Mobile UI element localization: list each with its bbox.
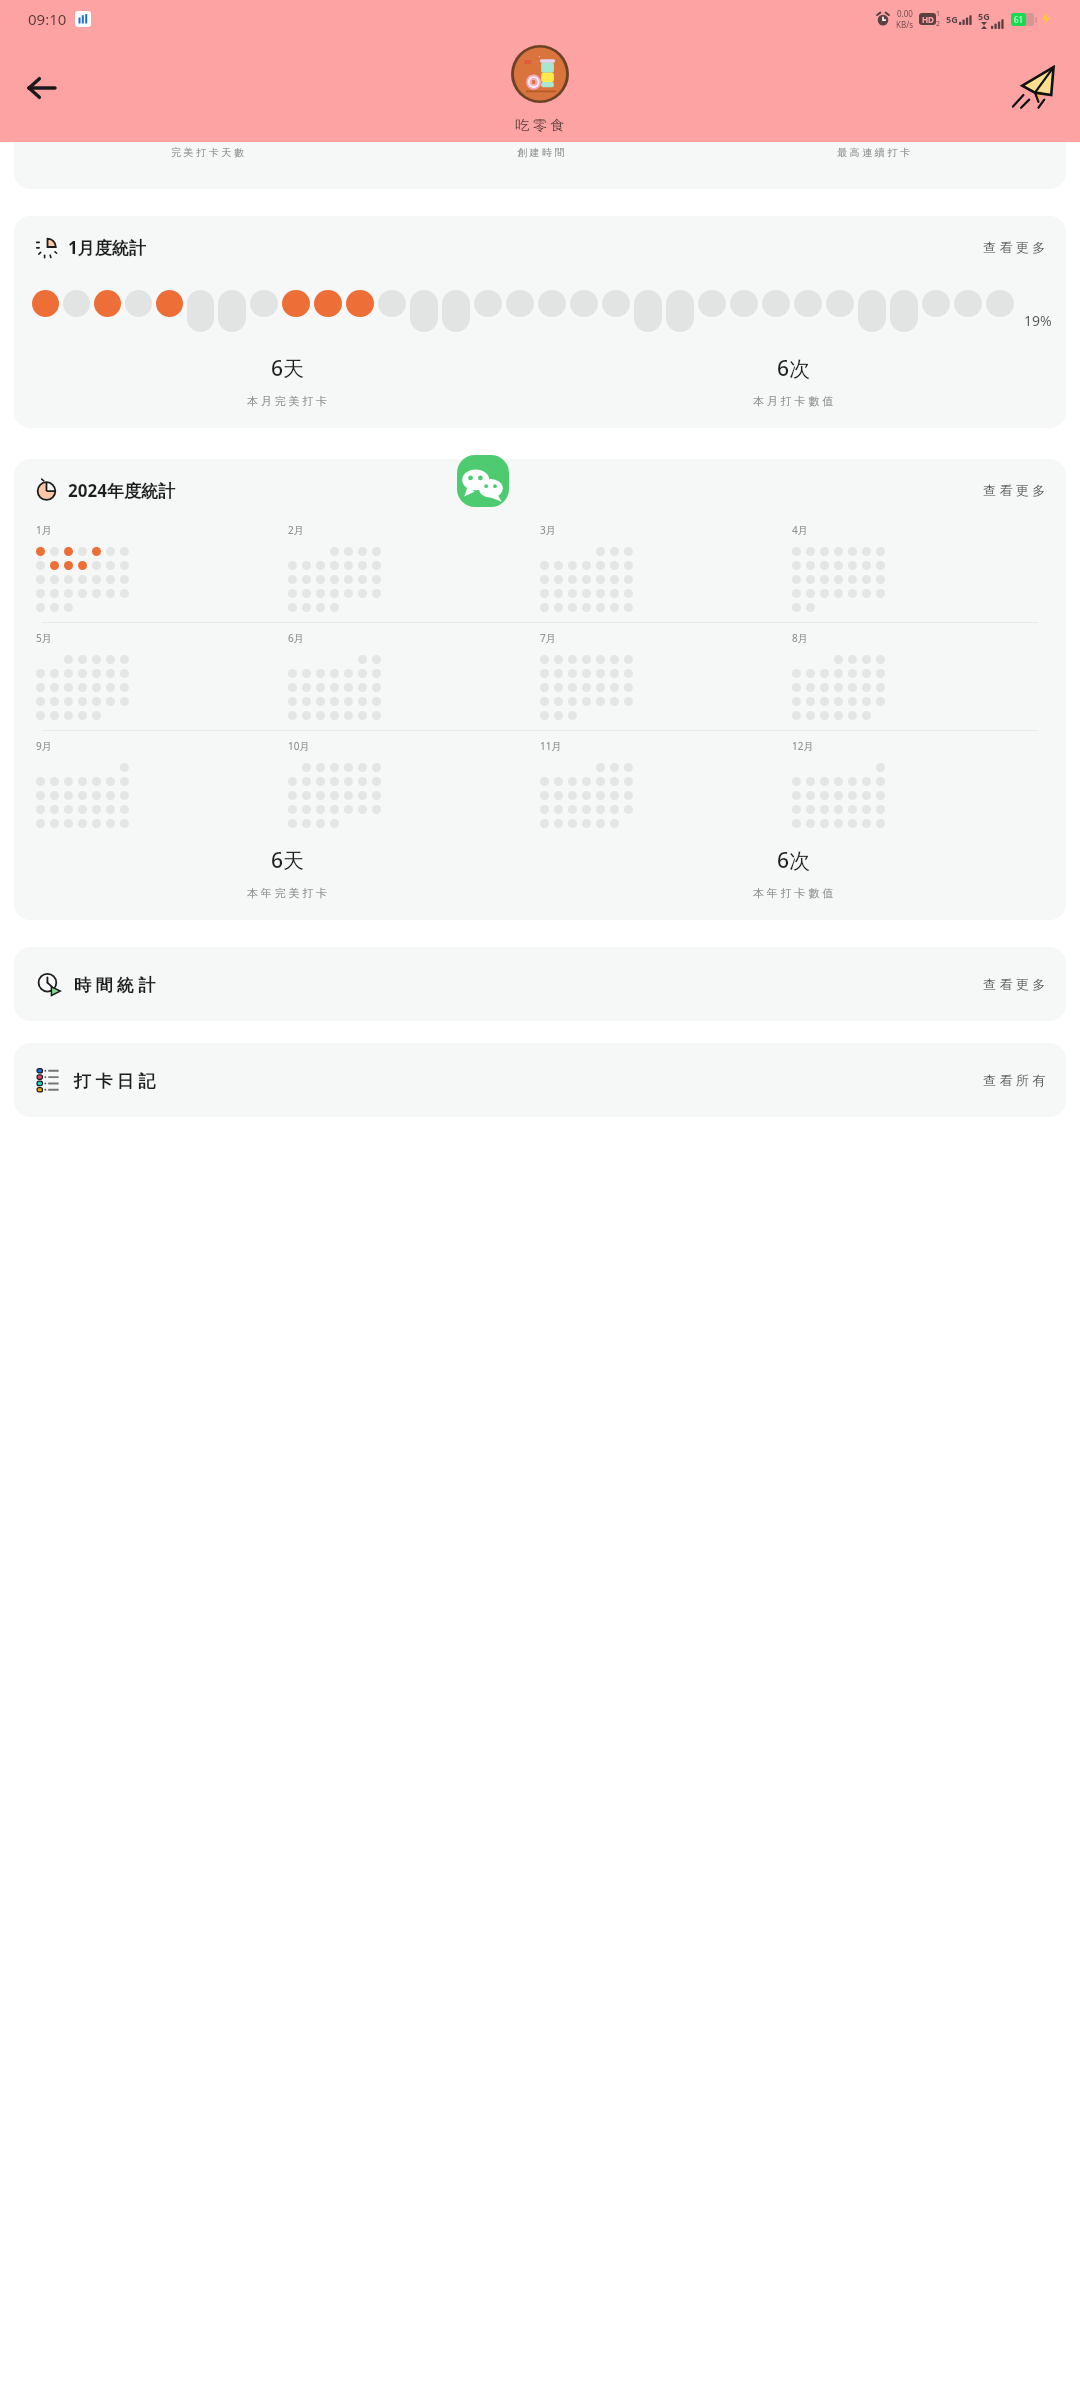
staticText: 6次 (777, 354, 811, 383)
staticText: 完 美 打 卡 天 數 (171, 145, 244, 159)
staticText: 2月 (288, 523, 304, 537)
staticText: 本 年 完 美 打 卡 (247, 885, 328, 900)
staticText: 11月 (540, 739, 562, 753)
staticText: 8月 (792, 631, 808, 645)
staticText: 本 月 完 美 打 卡 (247, 393, 328, 408)
staticText: 6次 (777, 846, 811, 875)
staticText: 09:10 (28, 9, 67, 29)
staticText: 3月 (540, 523, 556, 537)
staticText: 5G (978, 10, 990, 22)
button[interactable]: Share (1006, 59, 1064, 117)
staticText: 7月 (540, 631, 556, 645)
staticText: 查 看 所 有 (983, 1071, 1046, 1089)
staticText: 0.00 (897, 8, 913, 19)
staticText: 19% (1024, 311, 1052, 330)
button[interactable] (511, 45, 569, 103)
staticText: 1月度統計 (68, 236, 146, 259)
button[interactable]: 完 美 打 卡 天 數 (14, 142, 1066, 189)
staticText: 9月 (36, 739, 52, 753)
staticText: 本 年 打 卡 數 值 (753, 885, 834, 900)
button[interactable]: WeChat (457, 455, 509, 507)
staticText: 2 (936, 19, 941, 29)
staticText: 查 看 更 多 (983, 238, 1046, 256)
staticText: 6天 (271, 354, 305, 383)
staticText: 創 建 時 間 (517, 145, 565, 159)
staticText: 查 看 更 多 (983, 975, 1046, 993)
staticText: HD (922, 14, 934, 25)
staticText: KB/s (896, 19, 913, 30)
staticText: 查 看 更 多 (983, 481, 1046, 499)
button[interactable]: Back (14, 60, 70, 116)
staticText: 吃 零 食 (515, 115, 565, 134)
staticText: 5G (946, 13, 958, 25)
button[interactable]: 時 間 統 計 (14, 947, 1066, 1021)
staticText: 6天 (271, 846, 305, 875)
staticText: 6月 (288, 631, 304, 645)
staticText: 時 間 統 計 (74, 973, 156, 996)
staticText: 本 月 打 卡 數 值 (753, 393, 834, 408)
staticText: 12月 (792, 739, 814, 753)
button[interactable]: 打 卡 日 記 (14, 1043, 1066, 1117)
staticText: 最 高 連 續 打 卡 (837, 145, 910, 159)
staticText: 10月 (288, 739, 310, 753)
staticText: 61 (1014, 14, 1024, 25)
staticText: 2024年度統計 (68, 479, 175, 502)
staticText: 打 卡 日 記 (74, 1069, 156, 1092)
staticText: 1 (936, 9, 941, 19)
staticText: 4月 (792, 523, 808, 537)
button[interactable]: 1月度統計 (14, 216, 1066, 428)
staticText: 1月 (36, 523, 52, 537)
staticText: 5月 (36, 631, 52, 645)
button[interactable]: 2024年度統計 (14, 459, 1066, 920)
